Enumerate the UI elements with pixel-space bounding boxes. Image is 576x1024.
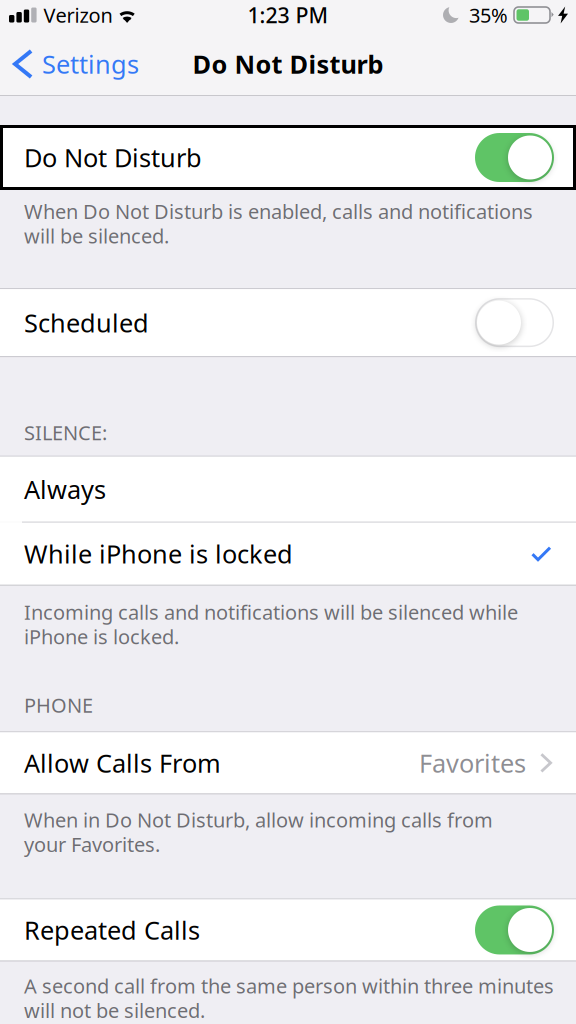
staticText: Allow Calls From — [24, 746, 221, 780]
staticText: A second call from the same person withi… — [24, 972, 554, 999]
button[interactable]: Repeated Calls — [0, 899, 576, 960]
staticText: will not be silenced. — [24, 997, 205, 1024]
button[interactable]: Do Not Disturb — [0, 125, 576, 190]
staticText: When Do Not Disturb is enabled, calls an… — [24, 198, 533, 225]
button[interactable]: Settings — [0, 42, 139, 86]
staticText: Settings — [42, 47, 139, 81]
staticText: Favorites — [419, 746, 526, 780]
button[interactable]: While iPhone is locked — [0, 523, 576, 585]
staticText: Verizon — [44, 2, 113, 28]
staticText: PHONE — [24, 692, 93, 718]
staticText: 35% — [469, 2, 508, 28]
staticText: Repeated Calls — [24, 913, 200, 947]
staticText: will be silenced. — [24, 223, 169, 249]
staticText: iPhone is locked. — [24, 623, 179, 650]
staticText: 1:23 PM — [247, 1, 328, 29]
staticText: When in Do Not Disturb, allow incoming c… — [24, 806, 493, 833]
button[interactable]: Scheduled — [0, 289, 576, 356]
staticText: Always — [24, 472, 106, 506]
staticText: Do Not Disturb — [192, 47, 383, 81]
staticText: Scheduled — [24, 306, 149, 339]
staticText: Do Not Disturb — [24, 141, 202, 174]
button[interactable]: Allow Calls From — [0, 732, 576, 793]
staticText: Incoming calls and notifications will be… — [24, 599, 518, 625]
staticText: SILENCE: — [24, 419, 107, 446]
button[interactable]: Always — [0, 457, 576, 522]
staticText: your Favorites. — [24, 831, 160, 857]
staticText: While iPhone is locked — [24, 537, 293, 570]
